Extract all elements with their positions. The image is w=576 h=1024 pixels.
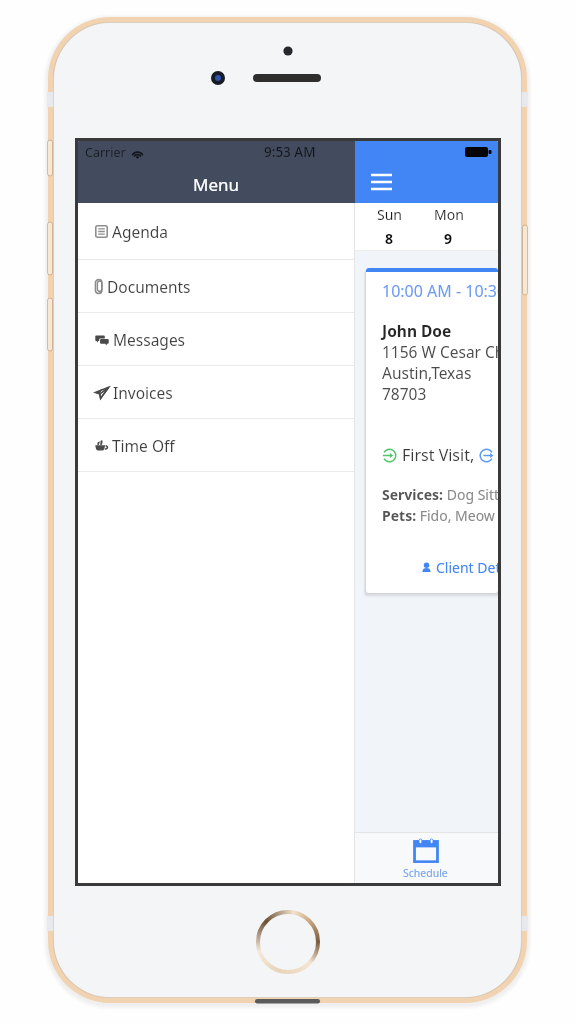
staticText: 9:53 AM xyxy=(264,143,316,161)
staticText: Schedule xyxy=(403,866,448,880)
button[interactable]: 10:00 AM - 10:30 AM xyxy=(366,268,498,593)
button[interactable]: Messages xyxy=(78,313,355,365)
staticText: Menu xyxy=(193,173,240,196)
button[interactable]: Client Details xyxy=(421,558,498,577)
staticText: Sun xyxy=(377,205,402,224)
staticText: First Visit, xyxy=(402,444,479,466)
staticText: Pets: Fido, Meow xyxy=(382,506,495,525)
button[interactable]: Agenda xyxy=(78,203,355,259)
staticText: 78703 xyxy=(382,383,427,404)
staticText: Agenda xyxy=(112,221,168,242)
staticText: 8 xyxy=(385,229,394,248)
button[interactable]: Schedule xyxy=(403,838,448,880)
button[interactable]: Time Off xyxy=(78,419,355,471)
staticText: Messages xyxy=(113,329,186,350)
button[interactable]: Open navigation menu xyxy=(363,167,399,195)
staticText: 9 xyxy=(444,229,453,248)
staticText: Documents xyxy=(107,276,191,297)
staticText: Carrier xyxy=(85,144,126,161)
staticText: 10:00 AM - 10:30 AM xyxy=(382,280,498,302)
staticText: Services: Dog Sitting xyxy=(382,485,498,504)
button[interactable]: Invoices xyxy=(78,366,355,418)
button[interactable]: Sun xyxy=(360,203,419,250)
button[interactable]: Mon xyxy=(419,203,478,250)
staticText: Time Off xyxy=(112,435,175,456)
staticText: Client Details xyxy=(436,558,498,577)
staticText: Austin,Texas xyxy=(382,362,472,383)
staticText: Invoices xyxy=(113,382,173,403)
button[interactable]: Documents xyxy=(78,260,355,312)
staticText: 1156 W Cesar Chavez St xyxy=(382,341,498,362)
staticText: Mon xyxy=(434,205,464,224)
staticText: John Doe xyxy=(382,320,452,341)
